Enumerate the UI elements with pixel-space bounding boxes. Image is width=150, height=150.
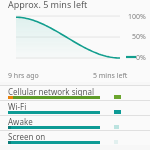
button[interactable]: Wi-Fi <box>0 100 150 115</box>
button[interactable]: Awake <box>0 115 150 130</box>
staticText: Approx. 5 mins left <box>8 0 88 10</box>
staticText: Awake <box>8 116 33 127</box>
button[interactable]: 100% <box>0 12 150 70</box>
staticText: 9 hrs ago <box>8 71 39 81</box>
staticText: Cellular network signal <box>8 86 95 97</box>
staticText: Screen on <box>8 131 46 142</box>
button[interactable]: Screen on <box>0 130 150 145</box>
staticText: 50% <box>132 32 146 42</box>
button[interactable]: Cellular network signal <box>0 85 150 100</box>
staticText: 5 mins left <box>93 71 128 81</box>
staticText: Wi-Fi <box>8 101 27 112</box>
staticText: 100% <box>128 12 146 22</box>
staticText: 0% <box>136 53 146 63</box>
